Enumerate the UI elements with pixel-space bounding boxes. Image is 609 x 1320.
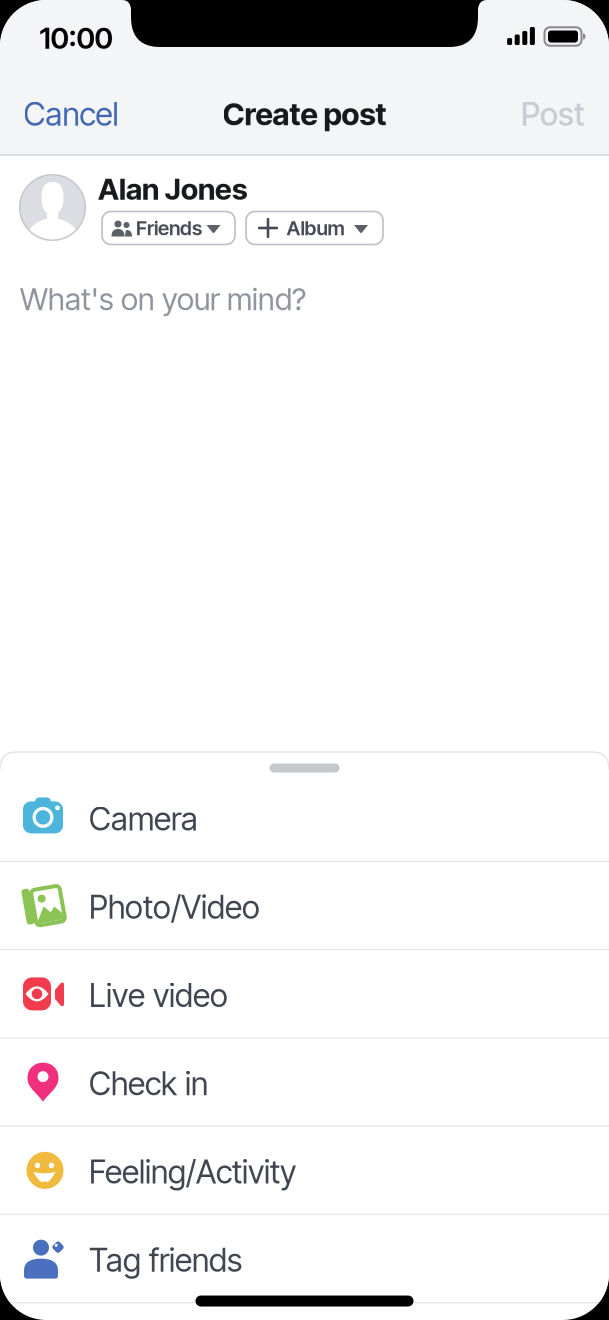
staticText: Post xyxy=(521,95,585,133)
button[interactable]: Camera xyxy=(0,774,609,861)
button[interactable]: Feeling/Activity xyxy=(0,1127,609,1214)
button[interactable]: Album xyxy=(246,211,383,244)
button[interactable]: Photo/Video xyxy=(0,862,609,949)
button[interactable]: Cancel xyxy=(23,95,118,133)
staticText: Cancel xyxy=(23,95,118,133)
staticText: Create post xyxy=(222,95,386,132)
staticText: Feeling/Activity xyxy=(89,1152,296,1191)
staticText: Album xyxy=(286,216,344,240)
staticText: Live video xyxy=(89,976,228,1015)
staticText: Tag friends xyxy=(89,1241,242,1279)
button[interactable]: Check in xyxy=(0,1039,609,1126)
staticText: 10:00 xyxy=(39,20,112,56)
button[interactable]: Friends xyxy=(102,211,235,244)
button[interactable]: Live video xyxy=(0,950,609,1037)
staticText: Alan Jones xyxy=(98,171,248,207)
staticText: Friends xyxy=(136,216,202,240)
button[interactable]: Post xyxy=(521,95,585,133)
staticText: Check in xyxy=(89,1064,208,1103)
staticText: What's on your mind? xyxy=(20,280,306,317)
button[interactable]: Tag friends xyxy=(0,1215,609,1302)
staticText: Camera xyxy=(89,799,198,838)
staticText: Photo/Video xyxy=(89,888,260,926)
